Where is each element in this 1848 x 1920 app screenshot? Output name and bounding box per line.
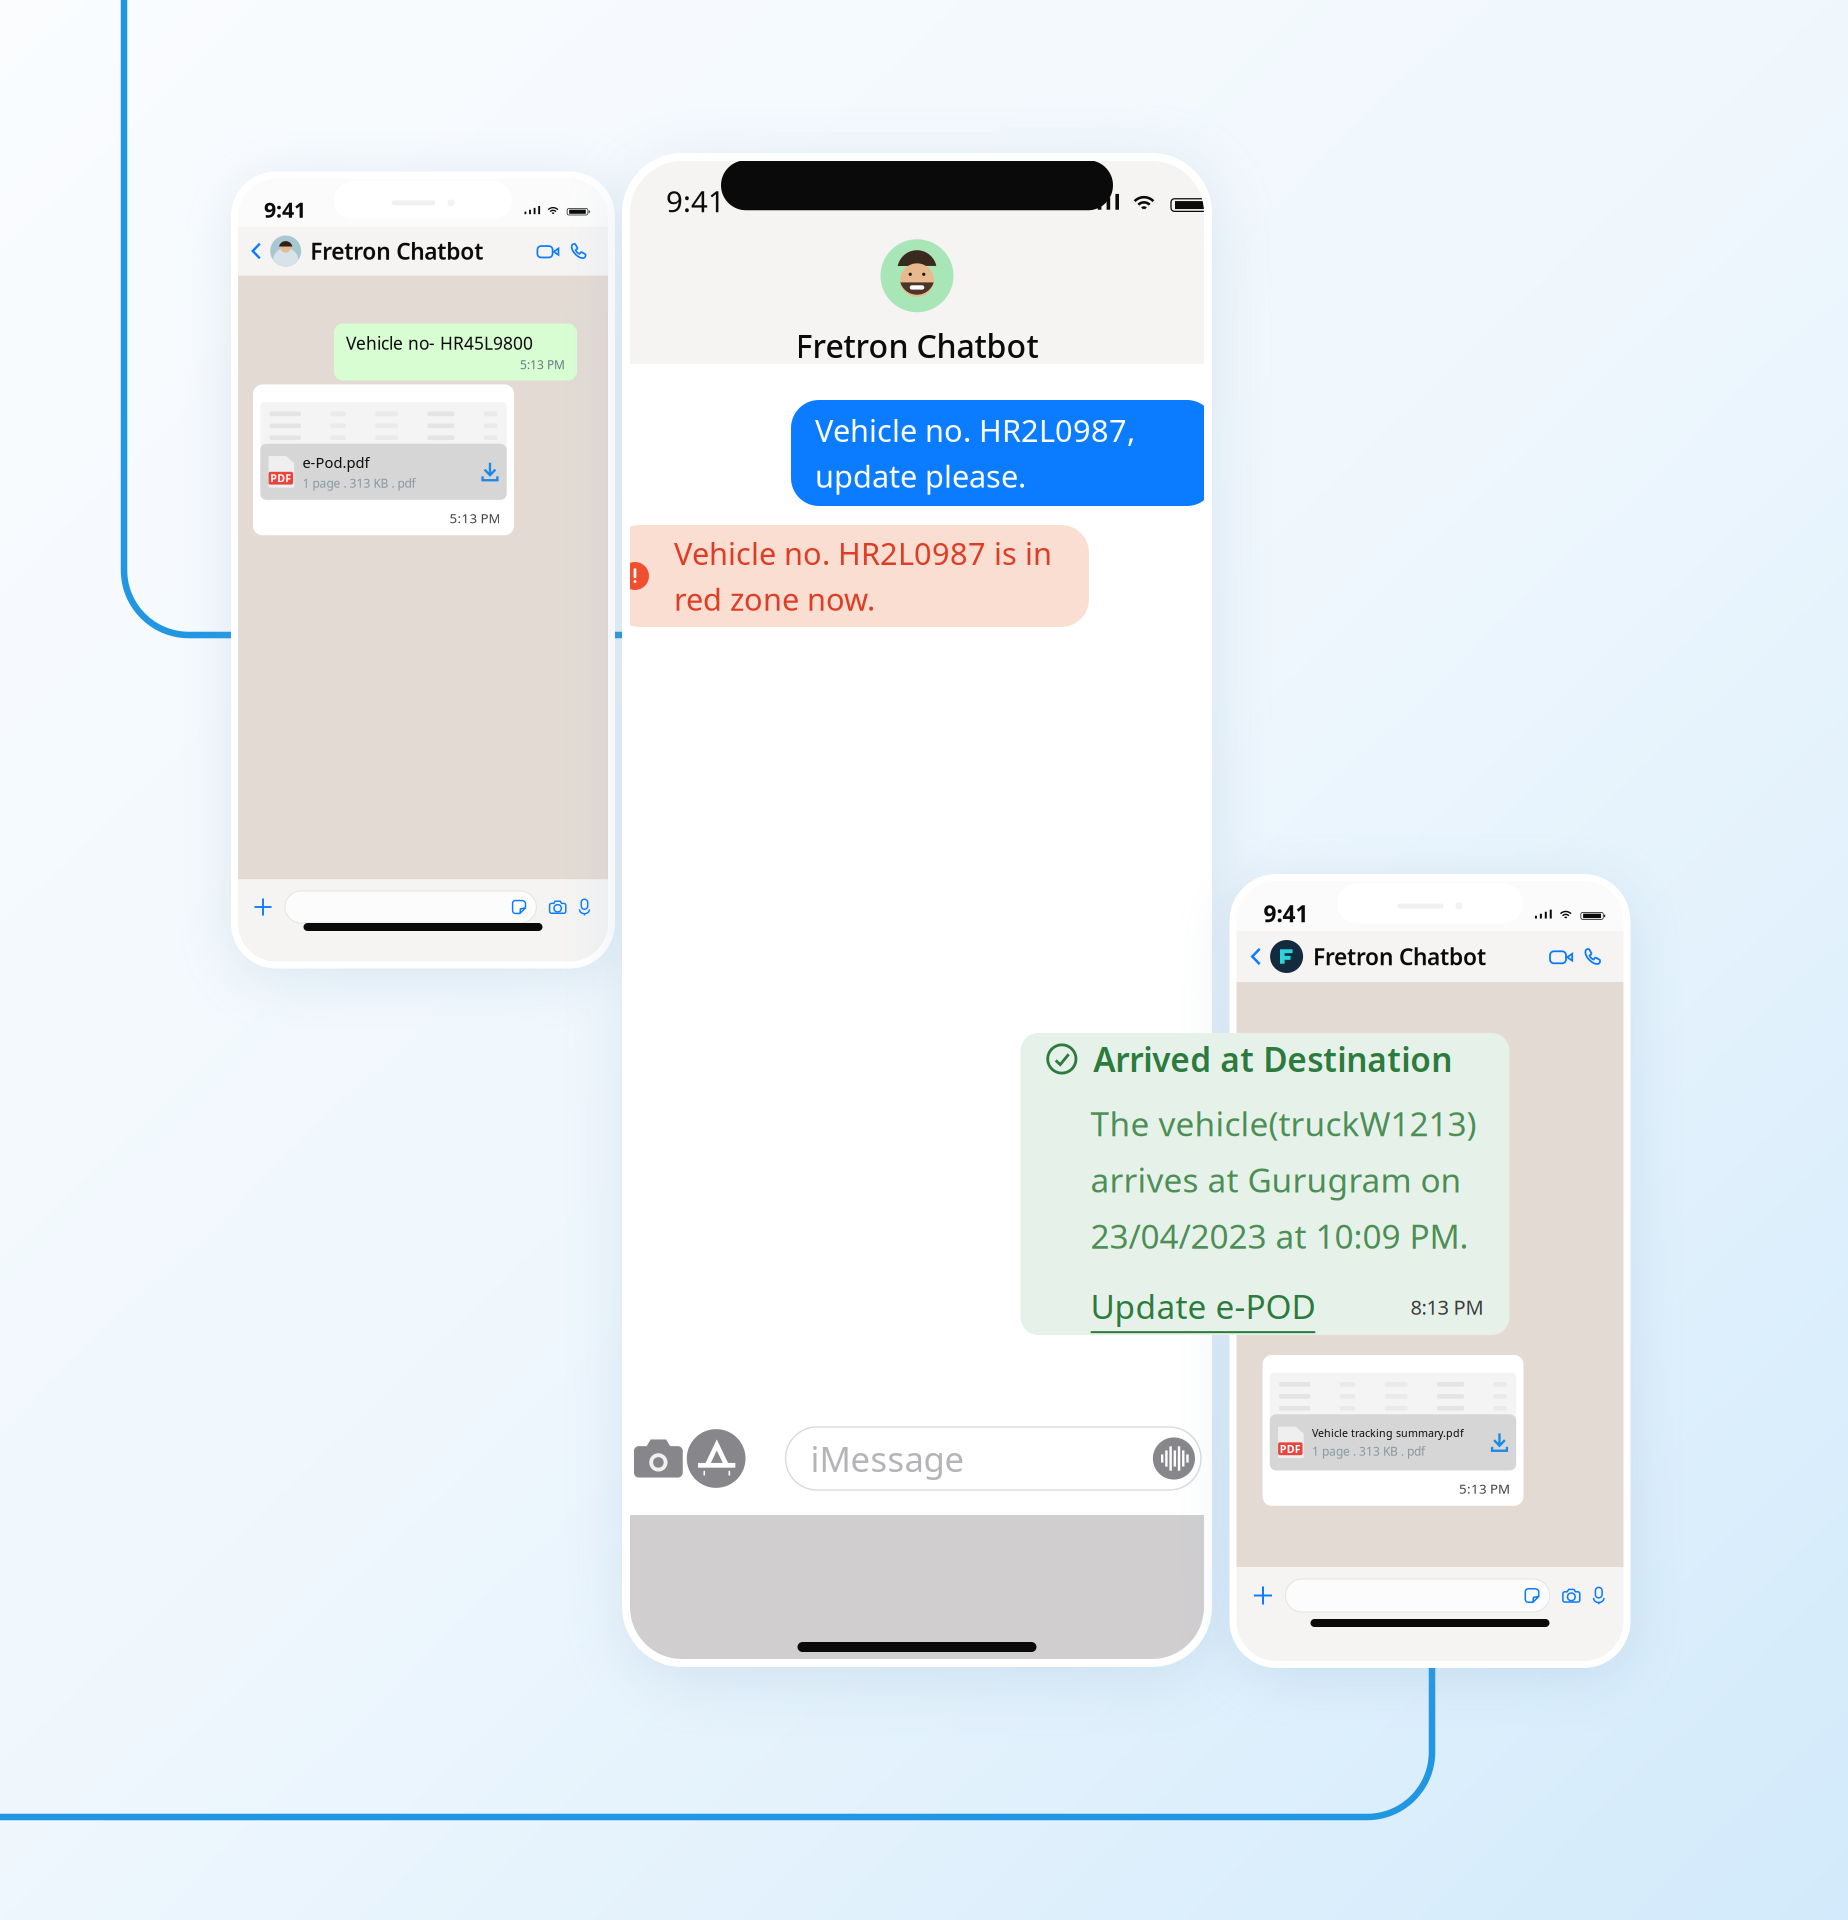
- button[interactable]: Voice message: [579, 899, 590, 915]
- staticText: red zone now.: [674, 578, 875, 619]
- staticText: Fretron Chatbot: [1313, 941, 1486, 971]
- staticText: The vehicle(truckW1213): [1090, 1101, 1476, 1145]
- staticText: 1 page . 313 KB . pdf: [302, 475, 415, 491]
- button[interactable]: Video call: [527, 244, 563, 258]
- button[interactable]: Camera: [634, 1439, 683, 1478]
- staticText: Arrived at Destination: [1093, 1037, 1452, 1081]
- button[interactable]: Attach: [254, 898, 272, 916]
- staticText: iMessage: [810, 1435, 964, 1481]
- staticText: Vehicle no. HR2L0987,: [815, 410, 1135, 450]
- staticText: Fretron Chatbot: [795, 324, 1038, 367]
- button[interactable]: Voice call: [563, 243, 594, 259]
- staticText: update please.: [815, 455, 1026, 496]
- button[interactable]: Camera: [549, 900, 566, 914]
- button[interactable]: Back: [238, 227, 301, 274]
- button[interactable]: Camera: [1563, 1588, 1580, 1603]
- staticText: PDF: [270, 471, 291, 485]
- staticText: 8:13 PM: [1410, 1294, 1483, 1320]
- staticText: arrives at Gurugram on: [1090, 1157, 1461, 1202]
- button[interactable]: Apps: [687, 1429, 746, 1488]
- staticText: Vehicle no- HR45L9800: [346, 331, 533, 354]
- staticText: 9:41: [1263, 898, 1308, 928]
- button[interactable]: Voice call: [1576, 948, 1608, 965]
- staticText: Vehicle no. HR2L0987 is in: [674, 533, 1052, 573]
- staticText: 9:41: [666, 181, 725, 220]
- button[interactable]: Video call: [1539, 949, 1576, 963]
- staticText: 5:13 PM: [449, 509, 500, 527]
- staticText: 9:41: [264, 195, 306, 224]
- button[interactable]: Back: [1236, 932, 1303, 981]
- button[interactable]: Attach: [1253, 1586, 1272, 1605]
- button[interactable]: Voice message: [1593, 1587, 1604, 1604]
- staticText: 1 page . 313 KB . pdf: [1312, 1443, 1425, 1459]
- staticText: Vehicle tracking summary.pdf: [1312, 1426, 1464, 1440]
- staticText: e-Pod.pdf: [302, 452, 369, 472]
- staticText: 5:13 PM: [1459, 1480, 1510, 1497]
- staticText: Update e-POD: [1090, 1284, 1315, 1328]
- staticText: 5:13 PM: [520, 356, 565, 372]
- staticText: PDF: [1280, 1442, 1301, 1456]
- staticText: 23/04/2023 at 10:09 PM.: [1090, 1214, 1468, 1258]
- staticText: Fretron Chatbot: [310, 236, 483, 266]
